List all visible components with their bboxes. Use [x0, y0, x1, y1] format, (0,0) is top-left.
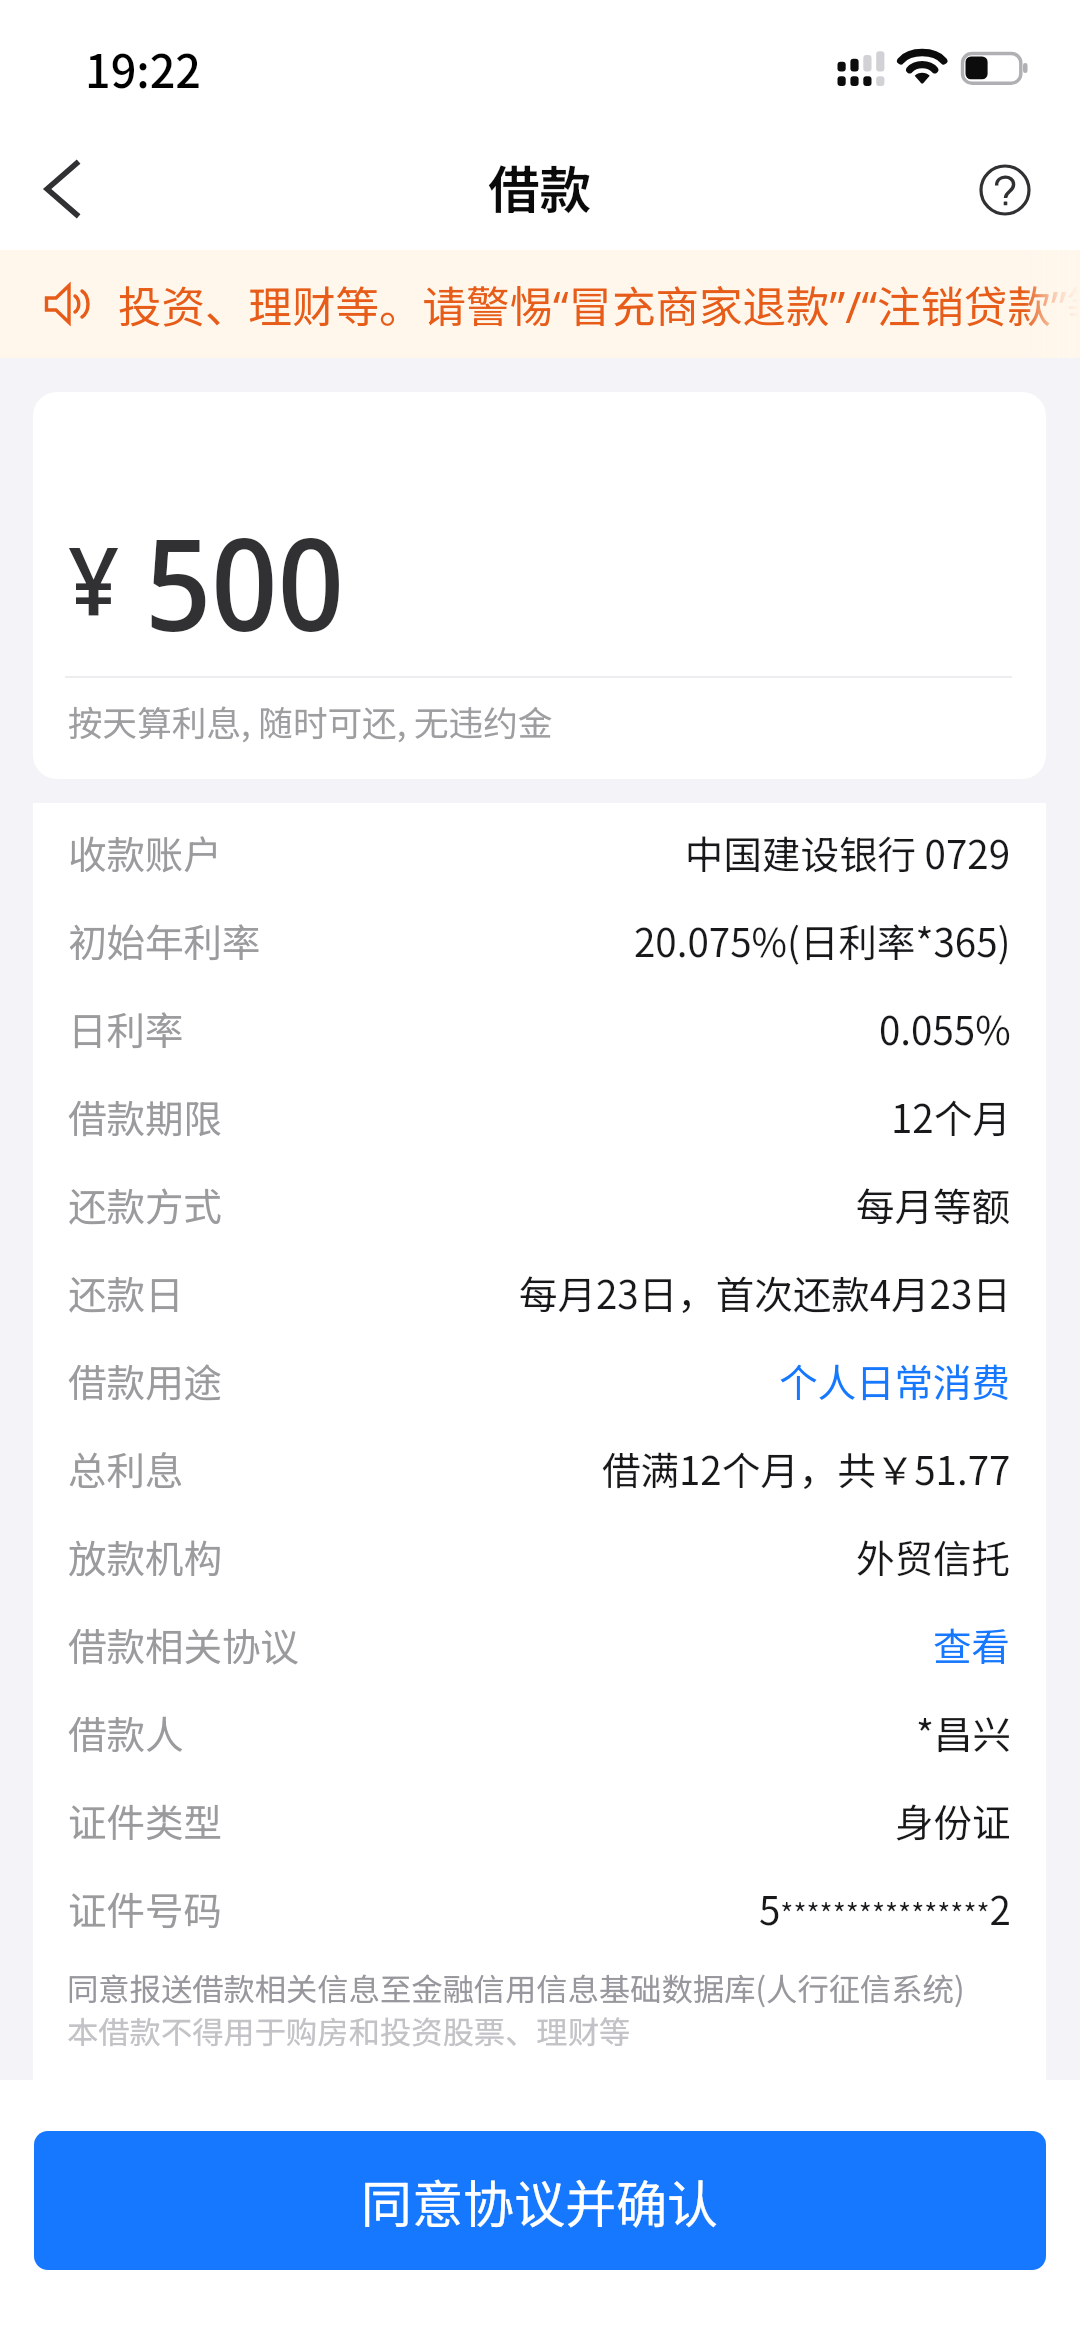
staticText: 12个月: [891, 1088, 1011, 1144]
button[interactable]: 还款方式: [68, 1160, 1011, 1248]
staticText: 每月23日，首次还款4月23日: [519, 1264, 1011, 1320]
button[interactable]: 证件类型: [68, 1776, 1011, 1864]
staticText: 证件类型: [68, 1792, 223, 1848]
staticText: 借款人: [68, 1704, 184, 1760]
staticText: 0.055%: [879, 1000, 1011, 1056]
staticText: 按天算利息, 随时可还, 无违约金: [68, 696, 553, 746]
staticText: 本借款不得用于购房和投资股票、理财等: [67, 2008, 631, 2053]
staticText: 借款用途: [68, 1352, 223, 1408]
button[interactable]: 证件号码: [68, 1864, 1011, 1952]
staticText: 同意协议并确认: [361, 2164, 719, 2238]
staticText: 总利息: [68, 1440, 184, 1496]
staticText: 收款账户: [68, 824, 223, 880]
staticText: 身份证: [895, 1792, 1011, 1848]
staticText: 借款期限: [68, 1088, 223, 1144]
button[interactable]: 借款相关协议: [68, 1600, 1011, 1688]
button[interactable]: 投资、理财等。请警惕“冒充商家退款”/“注销贷款”等诈骗: [0, 250, 1080, 358]
button[interactable]: 放款机构: [68, 1512, 1011, 1600]
staticText: 证件号码: [68, 1880, 223, 1936]
button[interactable]: Back: [0, 132, 124, 250]
button[interactable]: 同意协议并确认: [34, 2131, 1046, 2270]
staticText: 5****************2: [759, 1880, 1011, 1936]
staticText: 投资、理财等。请警惕“冒充商家退款”/“注销贷款”等诈骗: [118, 273, 1080, 336]
staticText: 同意报送借款相关信息至金融信用信息基础数据库(人行征信系统): [67, 1965, 965, 2010]
button[interactable]: 日利率: [68, 984, 1011, 1072]
button[interactable]: 借款人: [68, 1688, 1011, 1776]
staticText: 20.075%(日利率*365): [634, 912, 1011, 968]
staticText: 外贸信托: [856, 1528, 1011, 1584]
staticText: 日利率: [68, 1000, 184, 1056]
button[interactable]: 还款日: [68, 1248, 1011, 1336]
button[interactable]: 借款期限: [68, 1072, 1011, 1160]
staticText: 借款: [488, 149, 592, 224]
staticText: 每月等额: [856, 1176, 1011, 1232]
button[interactable]: 初始年利率: [68, 896, 1011, 984]
staticText: 借满12个月，共￥51.77: [602, 1440, 1011, 1496]
button[interactable]: 收款账户: [68, 808, 1011, 896]
button[interactable]: 借款用途: [68, 1336, 1011, 1424]
staticText: 查看: [933, 1616, 1011, 1672]
staticText: 个人日常消费: [779, 1352, 1011, 1408]
button[interactable]: 总利息: [68, 1424, 1011, 1512]
button[interactable]: Help: [945, 131, 1065, 250]
staticText: 还款方式: [68, 1176, 223, 1232]
staticText: 初始年利率: [68, 912, 261, 968]
staticText: 500: [145, 494, 344, 668]
staticText: 放款机构: [68, 1528, 223, 1584]
staticText: 借款相关协议: [68, 1616, 300, 1672]
staticText: *昌兴: [916, 1704, 1011, 1760]
staticText: 19:22: [85, 36, 202, 101]
staticText: 中国建设银行 0729: [685, 824, 1011, 880]
staticText: 还款日: [68, 1264, 184, 1320]
staticText: ¥: [68, 514, 120, 643]
